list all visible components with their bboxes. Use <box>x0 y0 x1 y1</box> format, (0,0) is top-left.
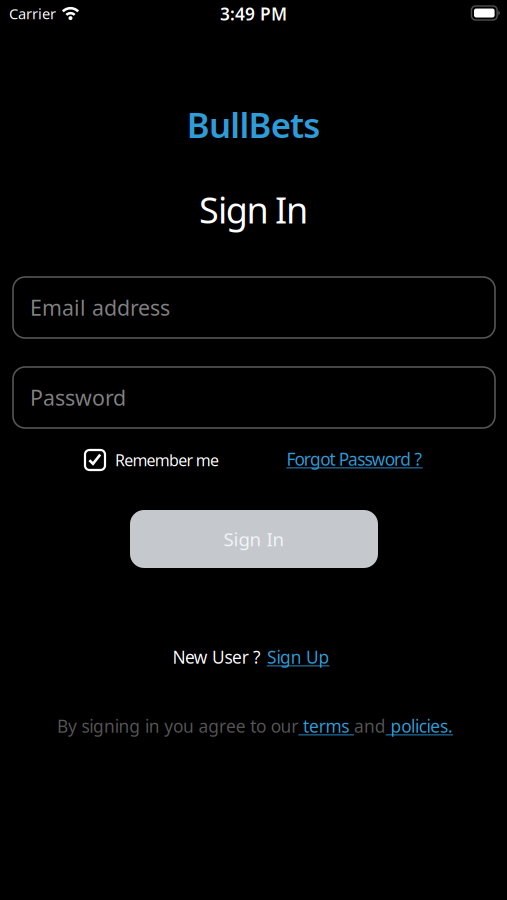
button[interactable]: Sign In <box>130 510 378 568</box>
button[interactable]: Password <box>13 367 495 428</box>
button[interactable]: Email address <box>13 277 495 338</box>
staticText: Forgot Password ? <box>286 447 423 470</box>
staticText: terms <box>298 714 354 737</box>
button[interactable]: Forgot Password ? <box>286 447 423 470</box>
button[interactable]: terms <box>298 714 354 737</box>
staticText: Sign In <box>223 527 284 551</box>
staticText: By signing in you agree to our <box>57 714 298 737</box>
staticText: New User ? <box>172 645 261 668</box>
staticText: Email address <box>30 293 170 322</box>
button[interactable]: Remember me <box>84 449 219 471</box>
staticText: policies. <box>386 714 453 737</box>
staticText: and <box>354 714 386 737</box>
staticText: Password <box>30 383 126 412</box>
button[interactable]: Sign Up <box>267 645 329 668</box>
staticText: BullBets <box>187 101 320 147</box>
staticText: Sign In <box>199 186 308 233</box>
staticText: 3:49 PM <box>220 2 287 25</box>
button[interactable]: policies. <box>386 714 453 737</box>
staticText: Carrier <box>9 4 56 23</box>
staticText: Remember me <box>115 449 219 471</box>
staticText: Sign Up <box>267 645 329 668</box>
